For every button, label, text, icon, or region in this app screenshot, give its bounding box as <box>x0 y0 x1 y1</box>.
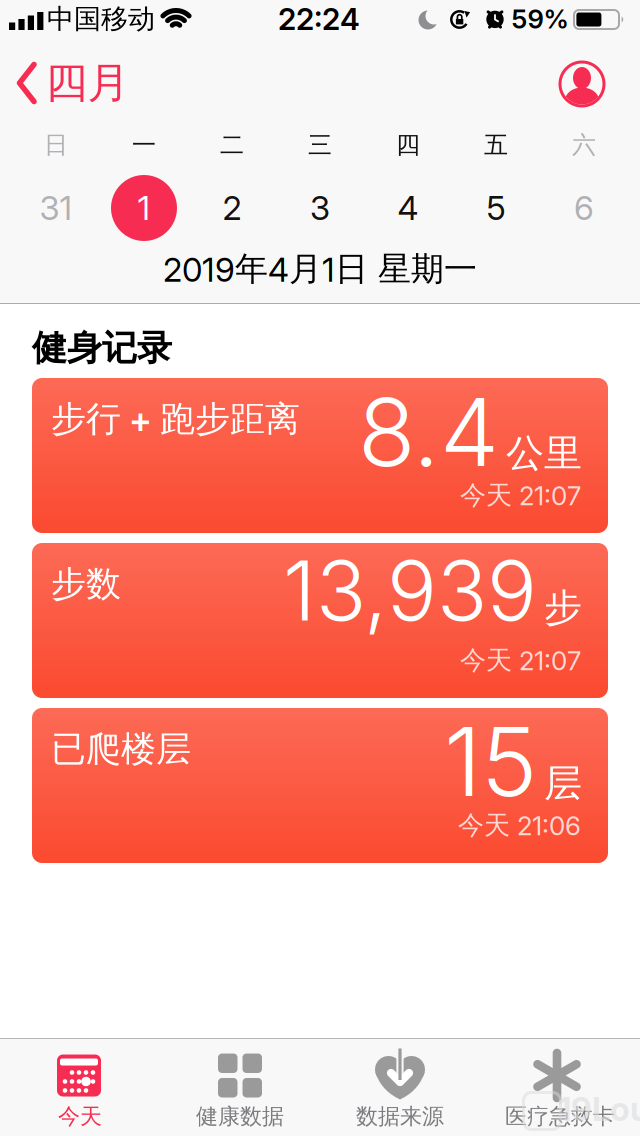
staticText: 3 <box>310 188 330 228</box>
staticText: 中国移动 <box>47 2 155 36</box>
staticText: 层 <box>544 759 582 807</box>
button[interactable]: 1 <box>100 165 188 251</box>
staticText: 三 <box>308 130 332 160</box>
staticText: 2 <box>222 188 241 228</box>
button[interactable]: 2 <box>188 165 276 251</box>
staticText: 日 <box>44 130 68 160</box>
button[interactable]: 今天 <box>0 1038 160 1136</box>
button[interactable]: 步行 + 跑步距离 <box>32 378 608 533</box>
staticText: 15 <box>444 704 537 819</box>
staticText: 一 <box>132 130 156 160</box>
button[interactable]: 3 <box>276 165 364 251</box>
staticText: 五 <box>484 130 508 160</box>
staticText: 4 <box>397 188 418 228</box>
staticText: 31 <box>39 188 72 228</box>
button[interactable]: 数据来源 <box>320 1038 480 1136</box>
button[interactable]: Profile <box>558 60 606 108</box>
staticText: 医疗急救卡 <box>505 1103 615 1130</box>
staticText: 步 <box>544 584 582 632</box>
staticText: 今天 21:07 <box>460 644 581 677</box>
button[interactable]: 健康数据 <box>160 1038 320 1136</box>
staticText: 四 <box>396 130 420 160</box>
staticText: 今天 <box>58 1103 102 1130</box>
staticText: 公里 <box>506 429 582 477</box>
staticText: 六 <box>572 130 596 160</box>
button[interactable]: 6 <box>540 165 628 251</box>
staticText: 今天 21:07 <box>460 479 581 512</box>
staticText: 今天 21:06 <box>458 809 581 842</box>
staticText: 13,939 <box>283 540 537 640</box>
staticText: 59% <box>511 3 568 35</box>
button[interactable]: 5 <box>452 165 540 251</box>
button[interactable]: 医疗急救卡 <box>480 1038 640 1136</box>
staticText: 19Lou <box>558 1089 640 1129</box>
button[interactable]: 已爬楼层 <box>32 708 608 863</box>
button[interactable]: 4 <box>364 165 452 251</box>
staticText: 22:24 <box>278 1 360 37</box>
staticText: 2019年4月1日 星期一 <box>163 248 477 290</box>
button[interactable]: 31 <box>12 165 100 251</box>
staticText: 步数 <box>51 562 121 606</box>
staticText: 已爬楼层 <box>51 727 191 771</box>
staticText: 数据来源 <box>356 1103 444 1130</box>
staticText: 5 <box>486 188 505 228</box>
button[interactable]: 步数 <box>32 543 608 698</box>
staticText: 健康数据 <box>196 1103 284 1130</box>
staticText: 步行 + 跑步距离 <box>51 397 300 441</box>
staticText: 二 <box>220 130 244 160</box>
staticText: 6 <box>574 188 594 228</box>
staticText: 8.4 <box>358 375 499 489</box>
staticText: 四月 <box>45 56 129 109</box>
staticText: 1 <box>137 188 150 228</box>
staticText: 健身记录 <box>32 326 172 370</box>
button[interactable]: 四月 <box>16 56 129 109</box>
